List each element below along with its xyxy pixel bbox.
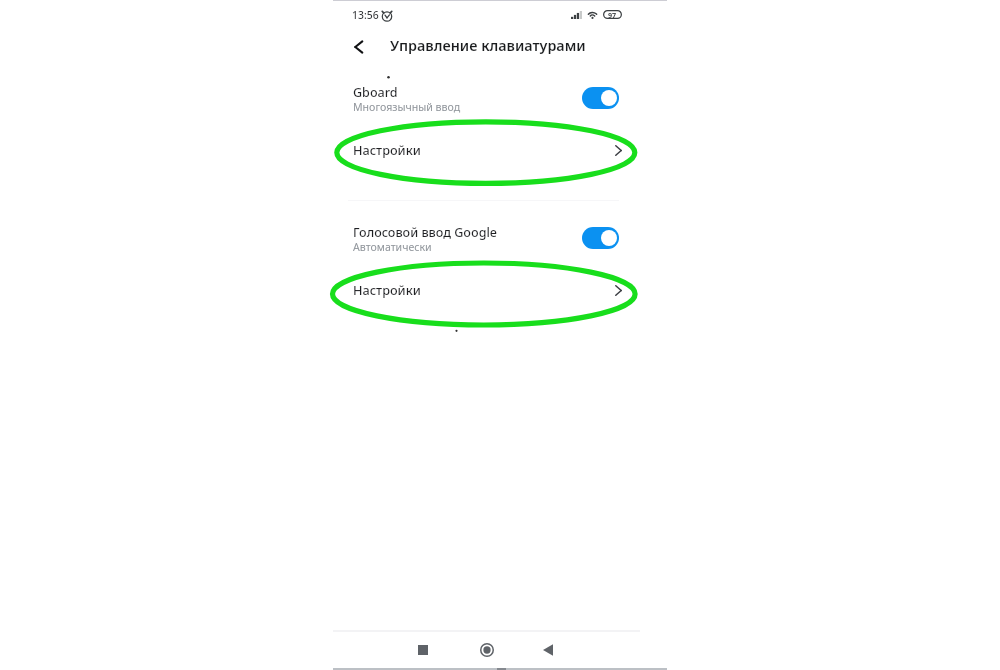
staticText: Gboard [353, 84, 398, 101]
button[interactable]: Back [337, 30, 379, 64]
staticText: Многоязычный ввод [353, 100, 461, 114]
staticText: 97 [608, 10, 617, 19]
staticText: 13:56 [352, 8, 379, 22]
staticText: Настройки [353, 281, 421, 298]
staticText: Автоматически [353, 240, 432, 254]
button[interactable]: Gboard enabled [582, 87, 619, 109]
button[interactable]: Google voice typing enabled [582, 227, 619, 249]
button[interactable]: Настройки [333, 277, 667, 301]
staticText: Голосовой ввод Google [353, 224, 498, 241]
button[interactable]: Настройки [333, 137, 667, 161]
staticText: Настройки [353, 141, 421, 158]
button[interactable]: Back [525, 634, 577, 666]
button[interactable]: Recent apps [397, 634, 449, 666]
staticText: Управление клавиатурами [390, 36, 586, 56]
button[interactable]: Home [461, 634, 513, 666]
